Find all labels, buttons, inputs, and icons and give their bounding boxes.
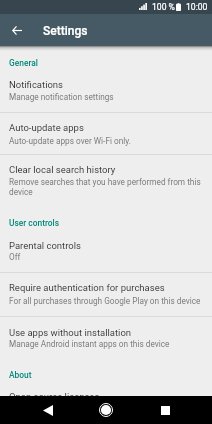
button[interactable]: Recent apps [151, 396, 179, 424]
staticText: Parental controls [9, 240, 81, 252]
staticText: Off [9, 252, 21, 262]
staticText: Clear local search history [9, 164, 116, 176]
staticText: Remove searches that you have performed … [9, 177, 207, 197]
button[interactable]: Open source licenses [0, 382, 212, 424]
staticText: 100 % [152, 2, 175, 12]
staticText: User controls [9, 219, 60, 228]
button[interactable]: Clear local search history [0, 155, 212, 206]
staticText: Manage notification settings [9, 92, 114, 102]
button[interactable]: Notifications [0, 69, 212, 112]
staticText: Settings [43, 24, 88, 38]
staticText: Auto-update apps [9, 122, 84, 134]
staticText: 10:00 [186, 2, 208, 12]
staticText: For all purchases through Google Play on… [9, 296, 201, 306]
staticText: Auto-update apps over Wi-Fi only. [9, 136, 131, 146]
button[interactable]: Auto-update apps [0, 113, 212, 155]
button[interactable]: Home [92, 396, 120, 424]
staticText: About [9, 371, 32, 380]
staticText: Notifications [9, 79, 64, 91]
staticText: Use apps without installation [9, 327, 132, 339]
staticText: Open source licenses [9, 391, 100, 403]
staticText: General [9, 59, 38, 68]
button[interactable]: Use apps without installation [0, 317, 212, 360]
button[interactable]: Navigate up [4, 17, 30, 43]
button[interactable]: Require authentication for purchases [0, 273, 212, 315]
staticText: Manage Android instant apps on this devi… [9, 339, 170, 349]
button[interactable]: Back [34, 396, 62, 424]
button[interactable]: Parental controls [0, 230, 212, 272]
staticText: Require authentication for purchases [9, 282, 165, 294]
